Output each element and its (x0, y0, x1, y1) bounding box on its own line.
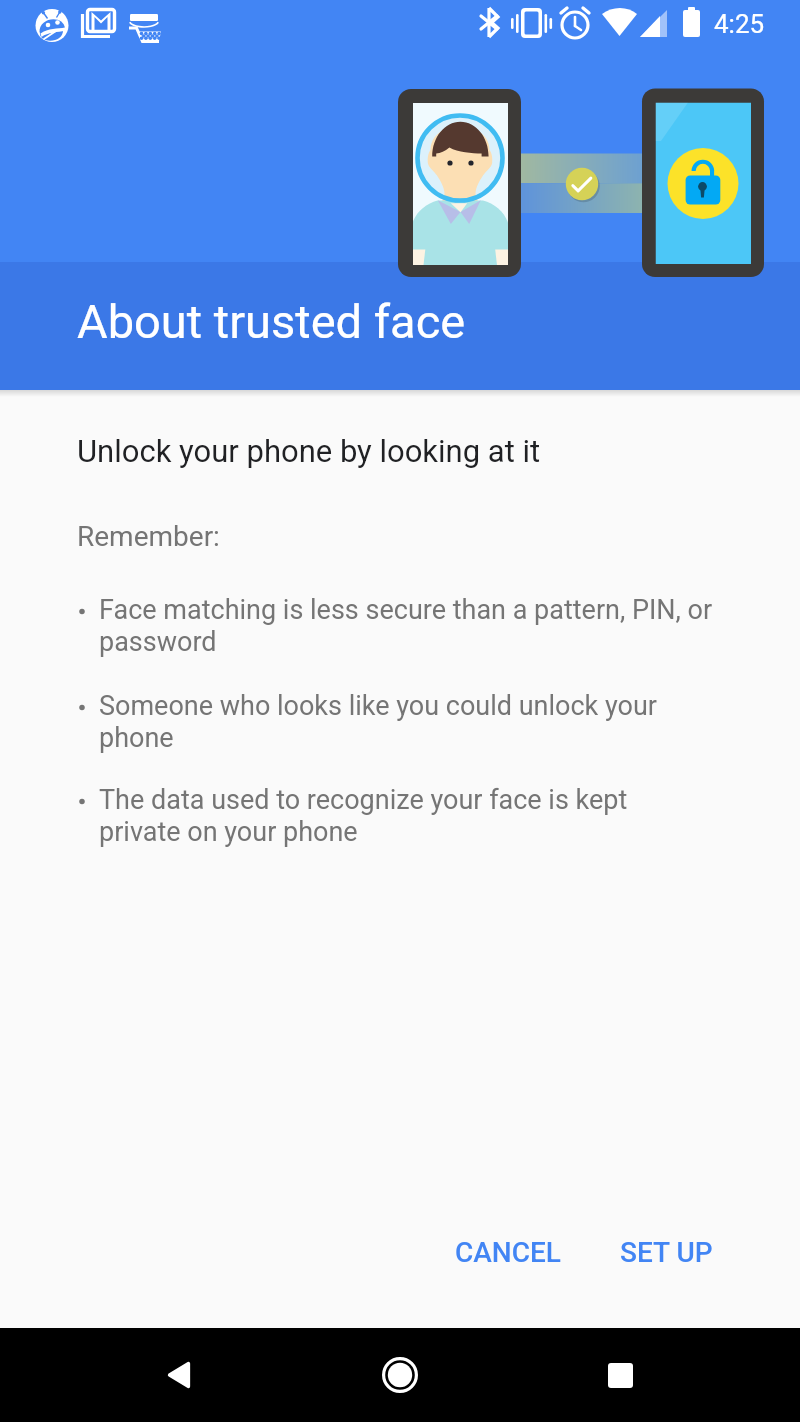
staticText: About trusted face (77, 294, 466, 349)
staticText: Someone who looks like you could unlock … (99, 690, 657, 754)
staticText: SET UP (620, 1236, 713, 1269)
button[interactable]: CANCEL (439, 1226, 577, 1279)
staticText: The data used to recognize your face is … (99, 784, 628, 848)
button[interactable]: SET UP (604, 1226, 729, 1279)
staticText: CANCEL (455, 1236, 561, 1269)
button[interactable]: Home (360, 1335, 440, 1415)
staticText: Remember: (77, 520, 220, 553)
staticText: Face matching is less secure than a patt… (99, 594, 713, 658)
button[interactable]: Back (139, 1335, 219, 1415)
staticText: 4:25 (714, 9, 765, 39)
staticText: Unlock your phone by looking at it (77, 433, 541, 469)
button[interactable]: Recent apps (580, 1335, 660, 1415)
